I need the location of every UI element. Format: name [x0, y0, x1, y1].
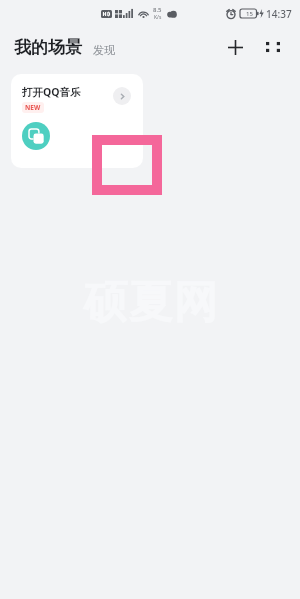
button[interactable]: More options — [256, 30, 290, 64]
button[interactable]: 我的场景 — [14, 37, 82, 58]
staticText: NEW — [25, 103, 41, 112]
button[interactable]: Open scene details — [113, 87, 131, 105]
staticText: 14:37 — [266, 7, 292, 21]
button[interactable]: Add scene — [218, 30, 252, 64]
staticText: 8.5 — [153, 6, 162, 14]
button[interactable]: 打开QQ音乐 — [11, 74, 143, 168]
staticText: 发现 — [93, 43, 115, 57]
staticText: 15 — [246, 10, 253, 18]
staticText: 打开QQ音乐 — [22, 85, 81, 99]
staticText: 我的场景 — [14, 37, 82, 58]
button[interactable]: 发现 — [93, 43, 115, 58]
staticText: K/s — [154, 14, 162, 21]
